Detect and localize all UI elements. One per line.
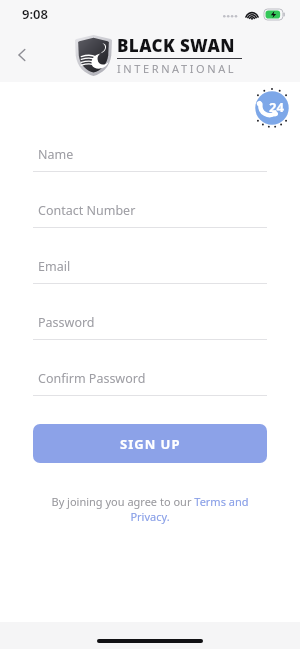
button[interactable]: Contact Number xyxy=(33,194,267,228)
staticText: Password xyxy=(38,314,95,331)
staticText: 9:08 xyxy=(22,5,48,23)
staticText: INTERNATIONAL xyxy=(117,61,237,76)
button[interactable]: Back xyxy=(6,39,38,71)
button[interactable]: Confirm Password xyxy=(33,362,267,396)
button[interactable]: Name xyxy=(33,138,267,172)
staticText: BLACK SWAN xyxy=(117,34,235,57)
button[interactable]: Password xyxy=(33,306,267,340)
staticText: 24 xyxy=(269,98,284,116)
staticText: SIGN UP xyxy=(120,435,181,453)
staticText: Name xyxy=(38,146,74,163)
button[interactable]: Email xyxy=(33,250,267,284)
button[interactable]: SIGN UP xyxy=(33,424,267,463)
staticText: Confirm Password xyxy=(38,370,146,387)
staticText: Email xyxy=(38,258,71,275)
button[interactable]: By joining you agree to our Terms and Pr… xyxy=(33,494,267,524)
button[interactable]: Tap to call us 24 hours xyxy=(250,86,294,130)
staticText: Contact Number xyxy=(38,202,136,219)
